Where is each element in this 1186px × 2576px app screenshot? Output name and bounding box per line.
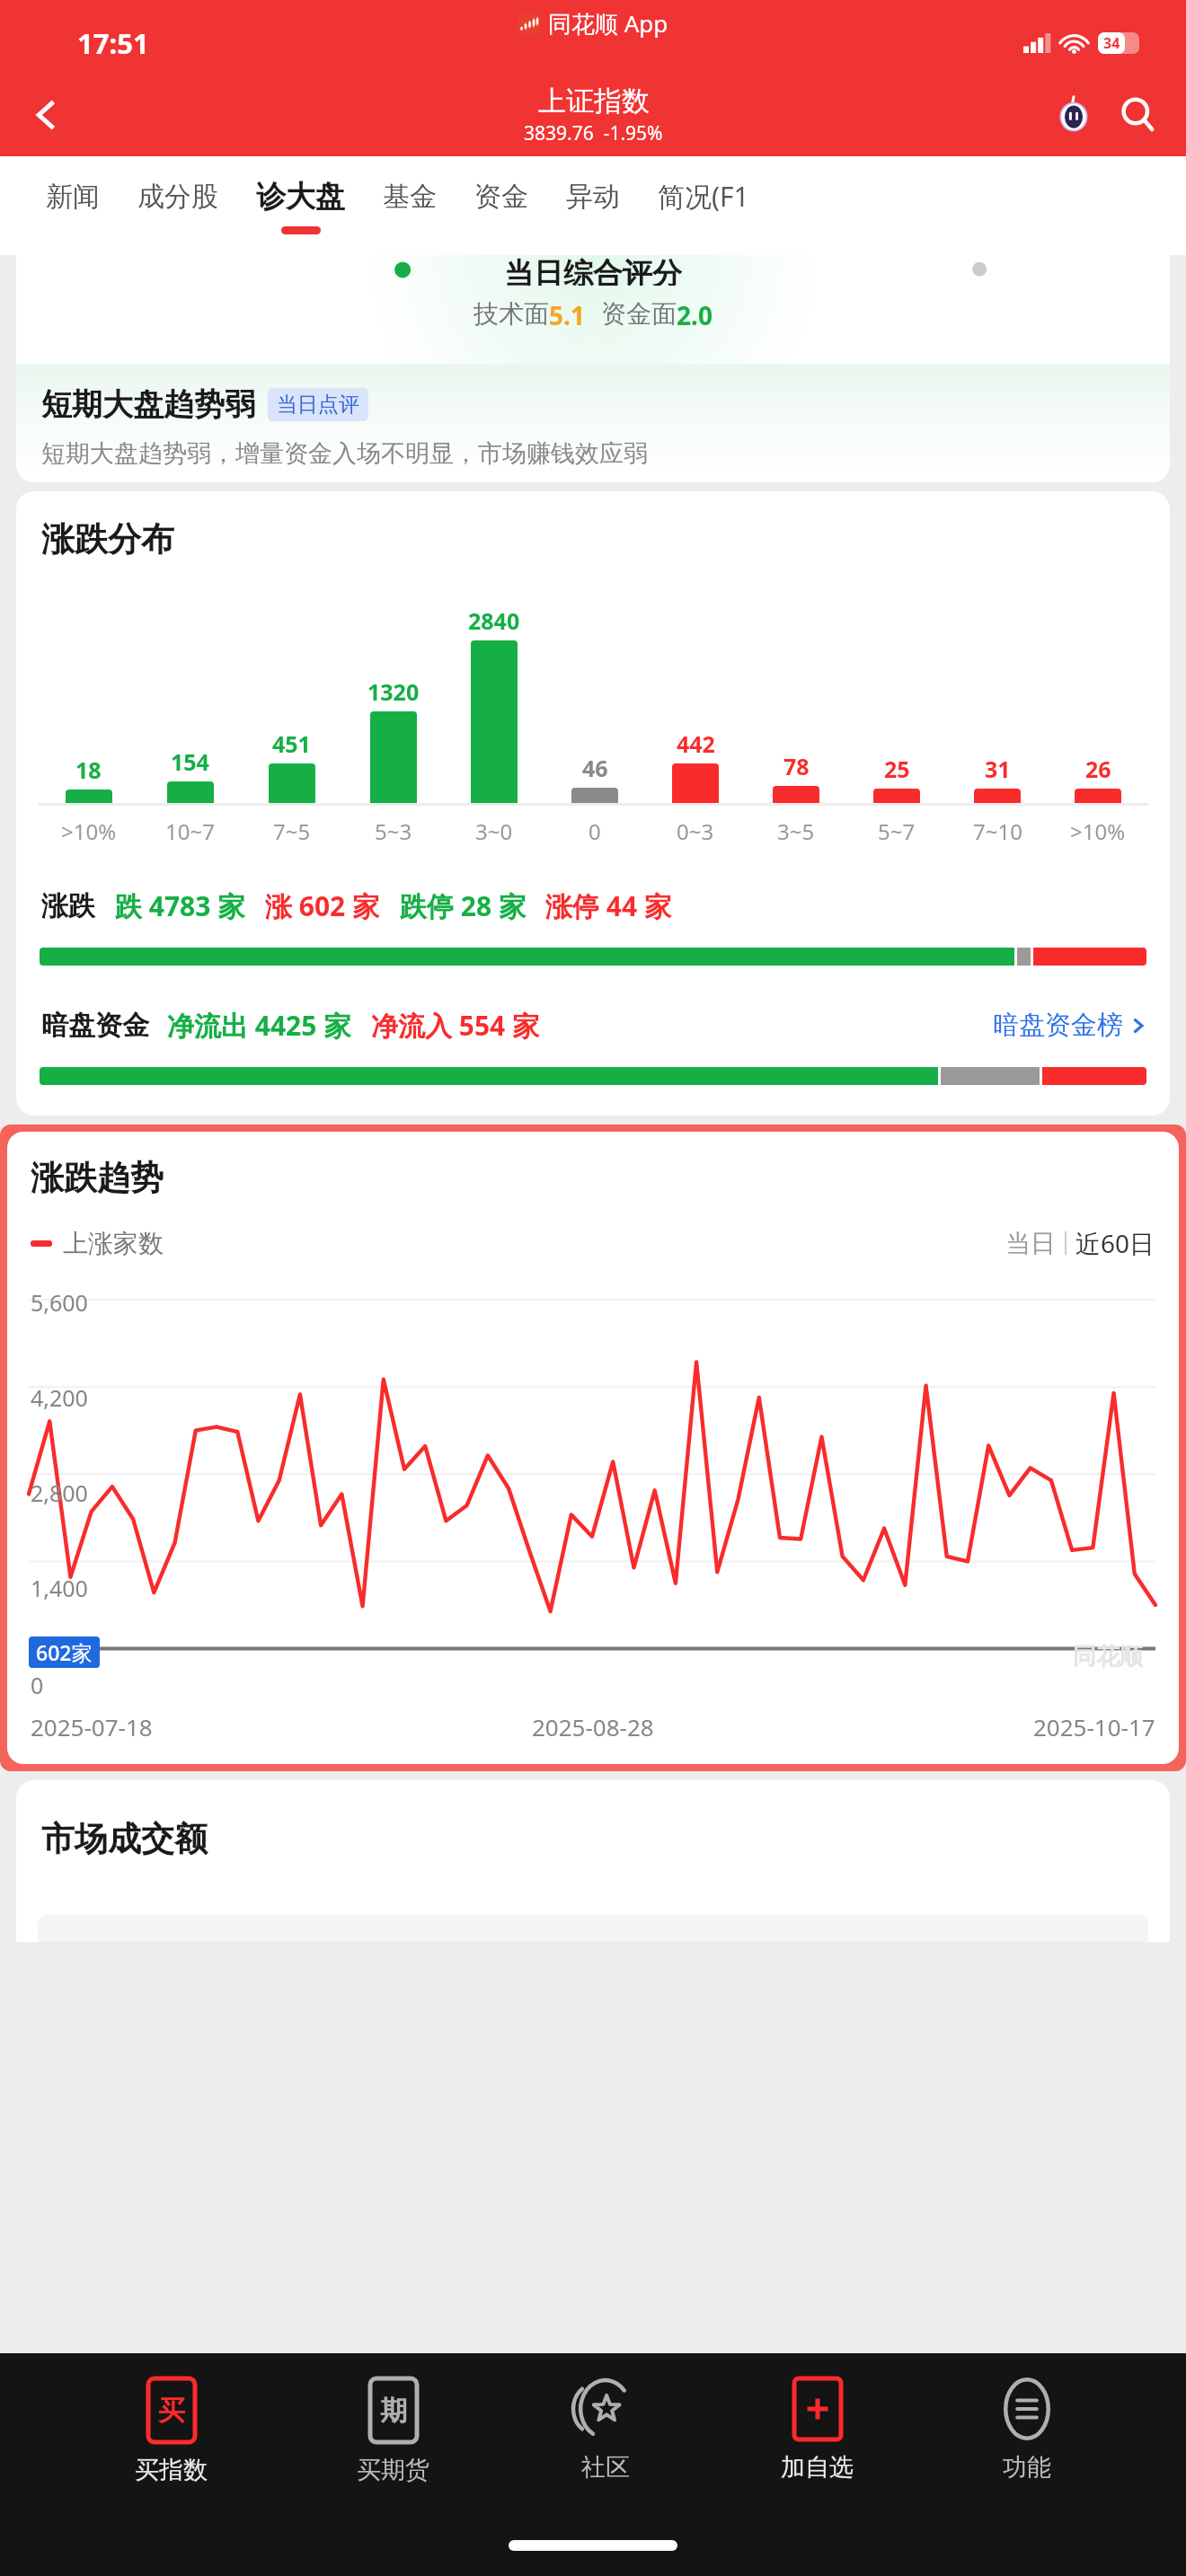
staticText: 7~10 <box>973 816 1022 846</box>
staticText: 涨跌 <box>41 889 95 923</box>
staticText: 涨跌分布 <box>41 518 174 560</box>
staticText: 功能 <box>1003 2452 1051 2483</box>
button[interactable]: AI assistant <box>1046 87 1102 143</box>
staticText: 78 <box>783 751 810 781</box>
staticText: 上涨家数 <box>63 1228 164 1259</box>
staticText: 5.1 <box>549 298 585 332</box>
staticText: 602家 <box>36 1638 93 1666</box>
staticText: 买指数 <box>135 2455 208 2485</box>
staticText: 简况(F1 <box>658 178 749 215</box>
staticText: 短期大盘趋势弱，增量资金入场不明显，市场赚钱效应弱 <box>41 438 648 469</box>
staticText: 34 <box>1103 33 1120 53</box>
staticText: 暗盘资金榜 <box>993 1009 1123 1042</box>
staticText: 当日 <box>1005 1228 1056 1259</box>
staticText: 3~0 <box>475 816 513 846</box>
staticText: 451 <box>272 728 311 759</box>
staticText: 26 <box>1085 754 1111 784</box>
button[interactable]: 基金 <box>364 156 456 255</box>
staticText: 0 <box>31 1670 44 1700</box>
staticText: 442 <box>677 728 715 759</box>
staticText: 基金 <box>383 180 437 214</box>
staticText: 5~7 <box>878 816 916 846</box>
staticText: 诊大盘 <box>256 178 345 216</box>
staticText: 25 <box>884 754 910 784</box>
staticText: 加自选 <box>781 2452 854 2483</box>
button[interactable]: 暗盘资金榜 <box>993 1009 1146 1042</box>
staticText: 2025-08-28 <box>532 1711 654 1742</box>
staticText: >10% <box>61 816 117 846</box>
button[interactable]: 功能 <box>988 2373 1066 2488</box>
staticText: 涨停 44 家 <box>545 887 671 924</box>
staticText: 17:51 <box>77 24 149 62</box>
staticText: 上证指数 <box>538 84 650 119</box>
staticText: 1,400 <box>31 1573 88 1603</box>
staticText: 2025-07-18 <box>31 1711 153 1742</box>
staticText: 2025-10-17 <box>1033 1711 1155 1742</box>
button[interactable]: 涨跌趋势 <box>7 1132 1179 1764</box>
staticText: 0 <box>589 816 601 846</box>
button[interactable]: 成分股 <box>119 156 237 255</box>
staticText: 1320 <box>367 676 420 707</box>
staticText: 2840 <box>468 605 520 636</box>
staticText: 技术面 <box>474 298 549 330</box>
button[interactable]: 异动 <box>547 156 639 255</box>
staticText: 社区 <box>581 2452 630 2483</box>
staticText: 154 <box>171 746 209 777</box>
button[interactable]: 近60日 <box>1075 1226 1155 1260</box>
staticText: 18 <box>75 754 102 785</box>
staticText: 涨跌趋势 <box>31 1157 164 1199</box>
staticText: 市场成交额 <box>41 1818 208 1860</box>
staticText: 成分股 <box>137 180 218 214</box>
button[interactable]: 买 <box>120 2373 222 2491</box>
staticText: 31 <box>985 754 1011 784</box>
staticText: 10~7 <box>165 816 215 846</box>
button[interactable]: 简况(F1 <box>639 156 768 255</box>
staticText: 2,800 <box>31 1478 88 1508</box>
staticText: 暗盘资金 <box>41 1009 149 1043</box>
button[interactable]: 当日综合评分 <box>16 255 1170 482</box>
button[interactable]: Search <box>1111 87 1166 143</box>
staticText: 近60日 <box>1075 1226 1155 1260</box>
staticText: 净流入 554 家 <box>371 1007 540 1044</box>
staticText: 跌停 28 家 <box>400 887 526 924</box>
staticText: 跌 4783 家 <box>115 887 245 924</box>
staticText: 新闻 <box>46 180 100 214</box>
staticText: 期 <box>380 2394 407 2428</box>
staticText: 短期大盘趋势弱 <box>41 385 255 424</box>
button[interactable]: 当日 <box>1005 1228 1056 1259</box>
button[interactable]: 社区 <box>565 2373 646 2488</box>
staticText: 4,200 <box>31 1382 88 1413</box>
button[interactable]: 市场成交额 <box>16 1780 1170 1942</box>
button[interactable]: Back <box>18 87 74 143</box>
staticText: 5,600 <box>31 1287 88 1318</box>
staticText: 同花顺 <box>1073 1642 1143 1672</box>
staticText: 同花顺 App <box>548 7 668 40</box>
staticText: 买 <box>158 2394 185 2428</box>
button[interactable]: 新闻 <box>27 156 119 255</box>
staticText: 资金 <box>474 180 528 214</box>
staticText: 买期货 <box>357 2455 429 2485</box>
button[interactable]: 资金 <box>456 156 547 255</box>
staticText: >10% <box>1070 816 1126 846</box>
staticText: 3~5 <box>777 816 815 846</box>
button[interactable]: 加自选 <box>766 2373 868 2488</box>
staticText: 净流出 4425 家 <box>167 1007 351 1044</box>
button[interactable]: 涨跌分布 <box>16 491 1170 1116</box>
staticText: 46 <box>582 753 608 783</box>
staticText: 5~3 <box>375 816 412 846</box>
staticText: 资金面 <box>601 298 677 330</box>
button[interactable]: 诊大盘 <box>237 156 364 255</box>
staticText: 2.0 <box>677 298 712 332</box>
staticText: 当日综合评分 <box>504 255 682 286</box>
staticText: 3839.76 -1.95% <box>524 120 663 146</box>
staticText: 0~3 <box>677 816 714 846</box>
staticText: 异动 <box>566 180 620 214</box>
staticText: 7~5 <box>273 816 311 846</box>
staticText: 涨 602 家 <box>265 887 380 924</box>
button[interactable]: 期 <box>342 2373 444 2491</box>
staticText: 当日点评 <box>277 392 359 418</box>
